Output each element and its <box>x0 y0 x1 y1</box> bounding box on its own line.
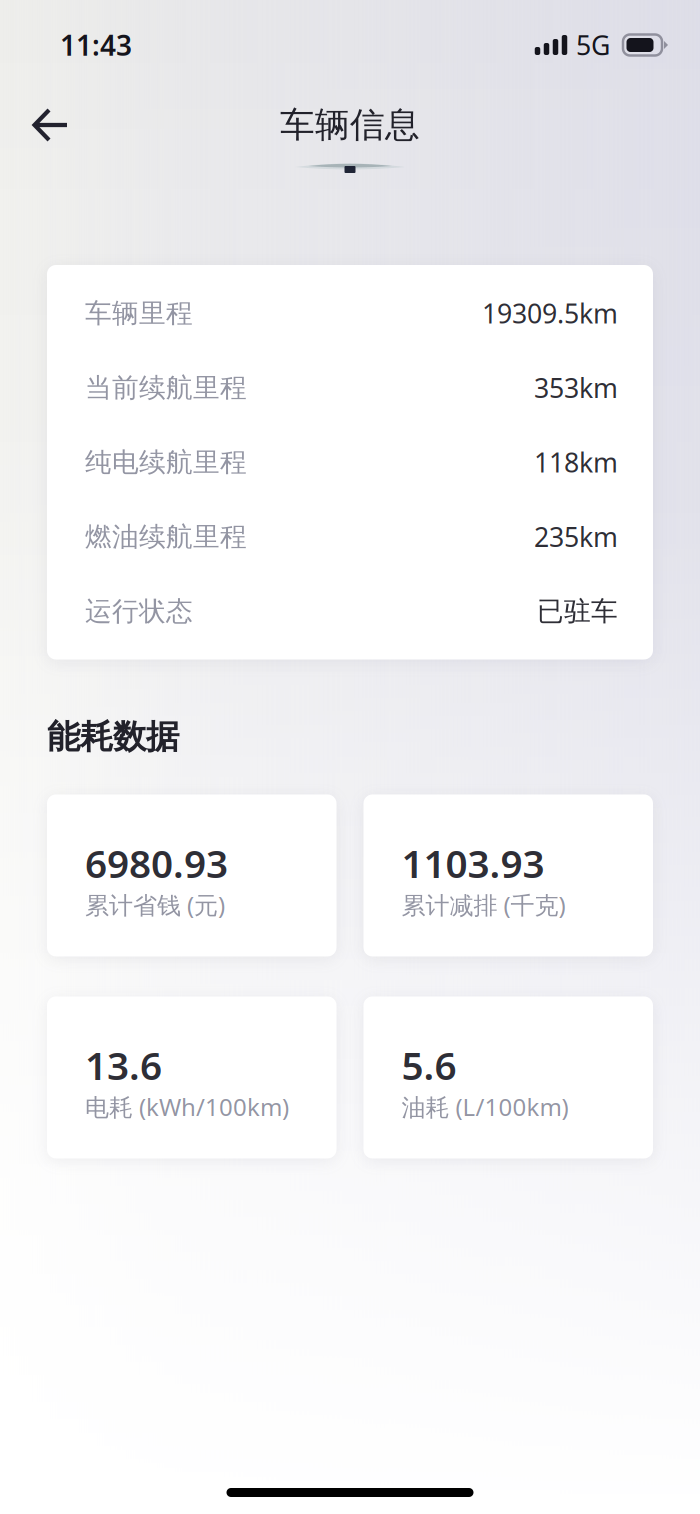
staticText: 118km <box>534 444 618 480</box>
staticText: 纯电续航里程 <box>85 446 247 479</box>
staticText: 已驻车 <box>537 595 618 628</box>
staticText: 11:43 <box>60 26 132 64</box>
staticText: 油耗 (L/100km) <box>401 1091 568 1123</box>
staticText: 燃油续航里程 <box>85 520 247 553</box>
staticText: 19309.5km <box>482 295 618 331</box>
staticText: 6980.93 <box>85 837 228 889</box>
staticText: 车辆信息 <box>280 104 420 146</box>
staticText: 电耗 (kWh/100km) <box>85 1091 289 1123</box>
staticText: 运行状态 <box>85 595 193 628</box>
staticText: 13.6 <box>85 1039 162 1091</box>
staticText: 5.6 <box>401 1039 456 1091</box>
staticText: 1103.93 <box>401 837 544 889</box>
staticText: 235km <box>534 519 618 554</box>
staticText: 累计省钱 (元) <box>85 889 225 921</box>
staticText: 5G <box>576 27 610 63</box>
staticText: 353km <box>534 370 618 405</box>
staticText: 能耗数据 <box>47 716 179 757</box>
staticText: 当前续航里程 <box>85 371 247 404</box>
staticText: 车辆里程 <box>85 297 193 330</box>
button[interactable]: 返回 <box>0 104 95 146</box>
staticText: 累计减排 (千克) <box>401 889 565 921</box>
